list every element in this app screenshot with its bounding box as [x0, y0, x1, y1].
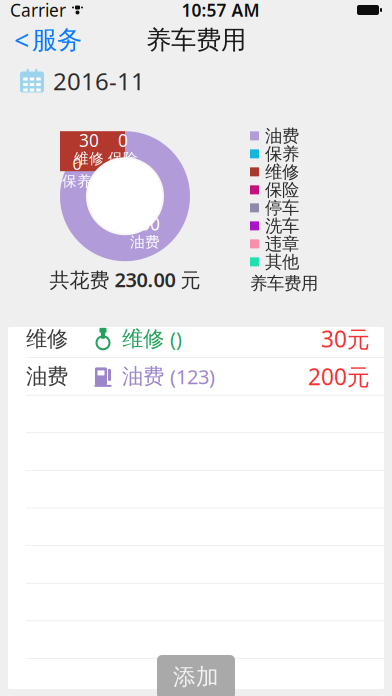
staticText: 2016-11 — [53, 65, 145, 97]
staticText: 维修 — [265, 161, 299, 182]
staticText: Carrier — [10, 0, 66, 21]
staticText: 保险 — [265, 179, 299, 200]
staticText: 服务 — [32, 24, 82, 55]
staticText: 共花费 230.00 元 — [49, 266, 200, 293]
staticText: 养车费用 — [146, 24, 246, 55]
staticText: 添加 — [173, 663, 219, 691]
staticText: 油费 — [122, 363, 164, 389]
staticText: 200元 — [308, 361, 370, 391]
staticText: 违章 — [265, 233, 299, 254]
staticText: 油费 — [130, 233, 160, 251]
staticText: (123) — [170, 363, 215, 390]
staticText: 保险 — [108, 150, 138, 168]
button[interactable]: 添加 — [157, 655, 235, 696]
staticText: 停车 — [265, 197, 299, 218]
staticText: 油费 — [26, 363, 68, 389]
staticText: () — [170, 325, 182, 352]
staticText: 30 — [79, 129, 99, 152]
button[interactable]: < — [0, 20, 96, 60]
staticText: 保养 — [265, 143, 299, 164]
staticText: 10:57 AM — [181, 0, 259, 21]
staticText: 30元 — [321, 324, 370, 354]
staticText: 其他 — [265, 251, 299, 272]
staticText: 维修 — [74, 150, 104, 168]
staticText: 200 — [130, 212, 160, 235]
staticText: 0 — [72, 153, 81, 174]
staticText: < — [14, 22, 29, 58]
staticText: 油费 — [265, 125, 299, 146]
staticText: 0 — [118, 129, 128, 152]
staticText: 养车费用 — [250, 273, 318, 294]
button[interactable]: 油费 — [8, 358, 384, 395]
staticText: 保养 — [62, 172, 92, 190]
button[interactable]: 维修 — [8, 320, 384, 357]
staticText: 维修 — [26, 326, 68, 352]
staticText: 维修 — [122, 326, 164, 352]
staticText: 洗车 — [265, 215, 299, 236]
